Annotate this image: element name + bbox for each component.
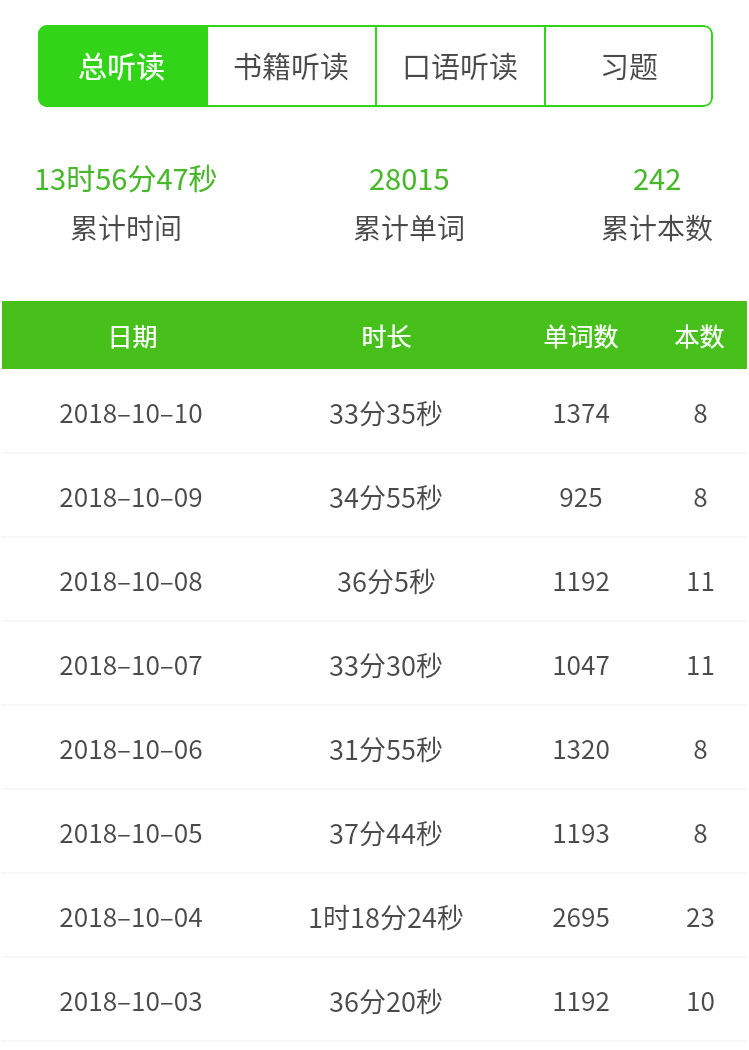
staticText: 10: [686, 981, 715, 1019]
staticText: 34分55秒: [329, 477, 443, 516]
staticText: 本数: [674, 317, 725, 353]
staticText: 2018–10–10: [59, 393, 203, 431]
button[interactable]: 2018–10–04: [0, 874, 749, 958]
staticText: 2018–10–08: [59, 561, 203, 599]
staticText: 11: [686, 645, 715, 683]
staticText: 23: [686, 897, 715, 935]
staticText: 口语听读: [402, 44, 519, 86]
staticText: 1374: [552, 393, 610, 431]
button[interactable]: 2018–10–07: [0, 622, 749, 706]
staticText: 2018–10–07: [59, 645, 203, 683]
button[interactable]: 28015: [252, 158, 566, 248]
button[interactable]: 242: [566, 158, 749, 248]
button[interactable]: 2018–10–08: [0, 538, 749, 622]
staticText: 2018–10–03: [59, 981, 203, 1019]
staticText: 总听读: [78, 44, 166, 86]
staticText: 33分30秒: [329, 645, 443, 684]
staticText: 2018–10–09: [59, 477, 203, 515]
staticText: 累计时间: [70, 207, 183, 248]
staticText: 习题: [600, 44, 659, 86]
staticText: 925: [559, 477, 603, 515]
button[interactable]: 书籍听读: [208, 25, 375, 107]
staticText: 累计本数: [601, 207, 714, 248]
staticText: 2018–10–04: [59, 897, 203, 935]
staticText: 8: [693, 477, 708, 515]
staticText: 8: [693, 729, 708, 767]
button[interactable]: 习题: [546, 25, 713, 107]
staticText: 36分20秒: [329, 981, 443, 1020]
staticText: 累计单词: [353, 207, 466, 248]
button[interactable]: 总听读: [38, 25, 206, 107]
staticText: 2695: [552, 897, 610, 935]
staticText: 31分55秒: [329, 729, 443, 768]
button[interactable]: 2018–10–09: [0, 454, 749, 538]
staticText: 8: [693, 813, 708, 851]
staticText: 1193: [552, 813, 610, 851]
staticText: 2018–10–05: [59, 813, 203, 851]
staticText: 33分35秒: [329, 393, 443, 432]
button[interactable]: 2018–10–05: [0, 790, 749, 874]
staticText: 1320: [552, 729, 610, 767]
staticText: 11: [686, 561, 715, 599]
button[interactable]: 2018–10–10: [0, 370, 749, 454]
staticText: 1时18分24秒: [308, 897, 464, 936]
button[interactable]: 2018–10–03: [0, 958, 749, 1042]
button[interactable]: 口语听读: [377, 25, 544, 107]
staticText: 1047: [552, 645, 610, 683]
button[interactable]: 13时56分47秒: [0, 158, 252, 248]
staticText: 8: [693, 393, 708, 431]
staticText: 书籍听读: [233, 44, 350, 86]
staticText: 36分5秒: [337, 561, 436, 600]
staticText: 单词数: [543, 317, 619, 353]
staticText: 28015: [369, 156, 450, 198]
staticText: 日期: [107, 317, 158, 353]
button[interactable]: 2018–10–06: [0, 706, 749, 790]
staticText: 1192: [552, 981, 610, 1019]
staticText: 13时56分47秒: [34, 156, 218, 198]
staticText: 2018–10–06: [59, 729, 203, 767]
staticText: 242: [633, 156, 682, 198]
staticText: 1192: [552, 561, 610, 599]
staticText: 时长: [361, 317, 412, 353]
staticText: 37分44秒: [329, 813, 443, 852]
